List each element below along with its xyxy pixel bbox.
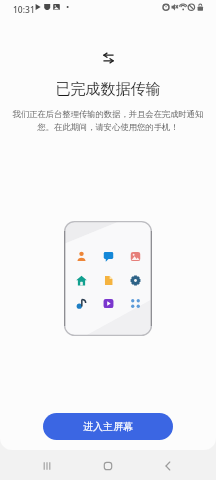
button[interactable]: Back	[154, 452, 182, 480]
staticText: 已完成数据传输	[0, 80, 216, 99]
staticText: 进入主屏幕	[83, 420, 133, 433]
button[interactable]: Home	[94, 452, 122, 480]
staticText: 10:31	[13, 4, 35, 16]
staticText: 我们正在后台整理传输的数据，并且会在完成时通知您。在此期间，请安心使用您的手机！	[12, 109, 204, 133]
button[interactable]: 进入主屏幕	[43, 413, 173, 440]
button[interactable]: Recents	[33, 452, 61, 480]
